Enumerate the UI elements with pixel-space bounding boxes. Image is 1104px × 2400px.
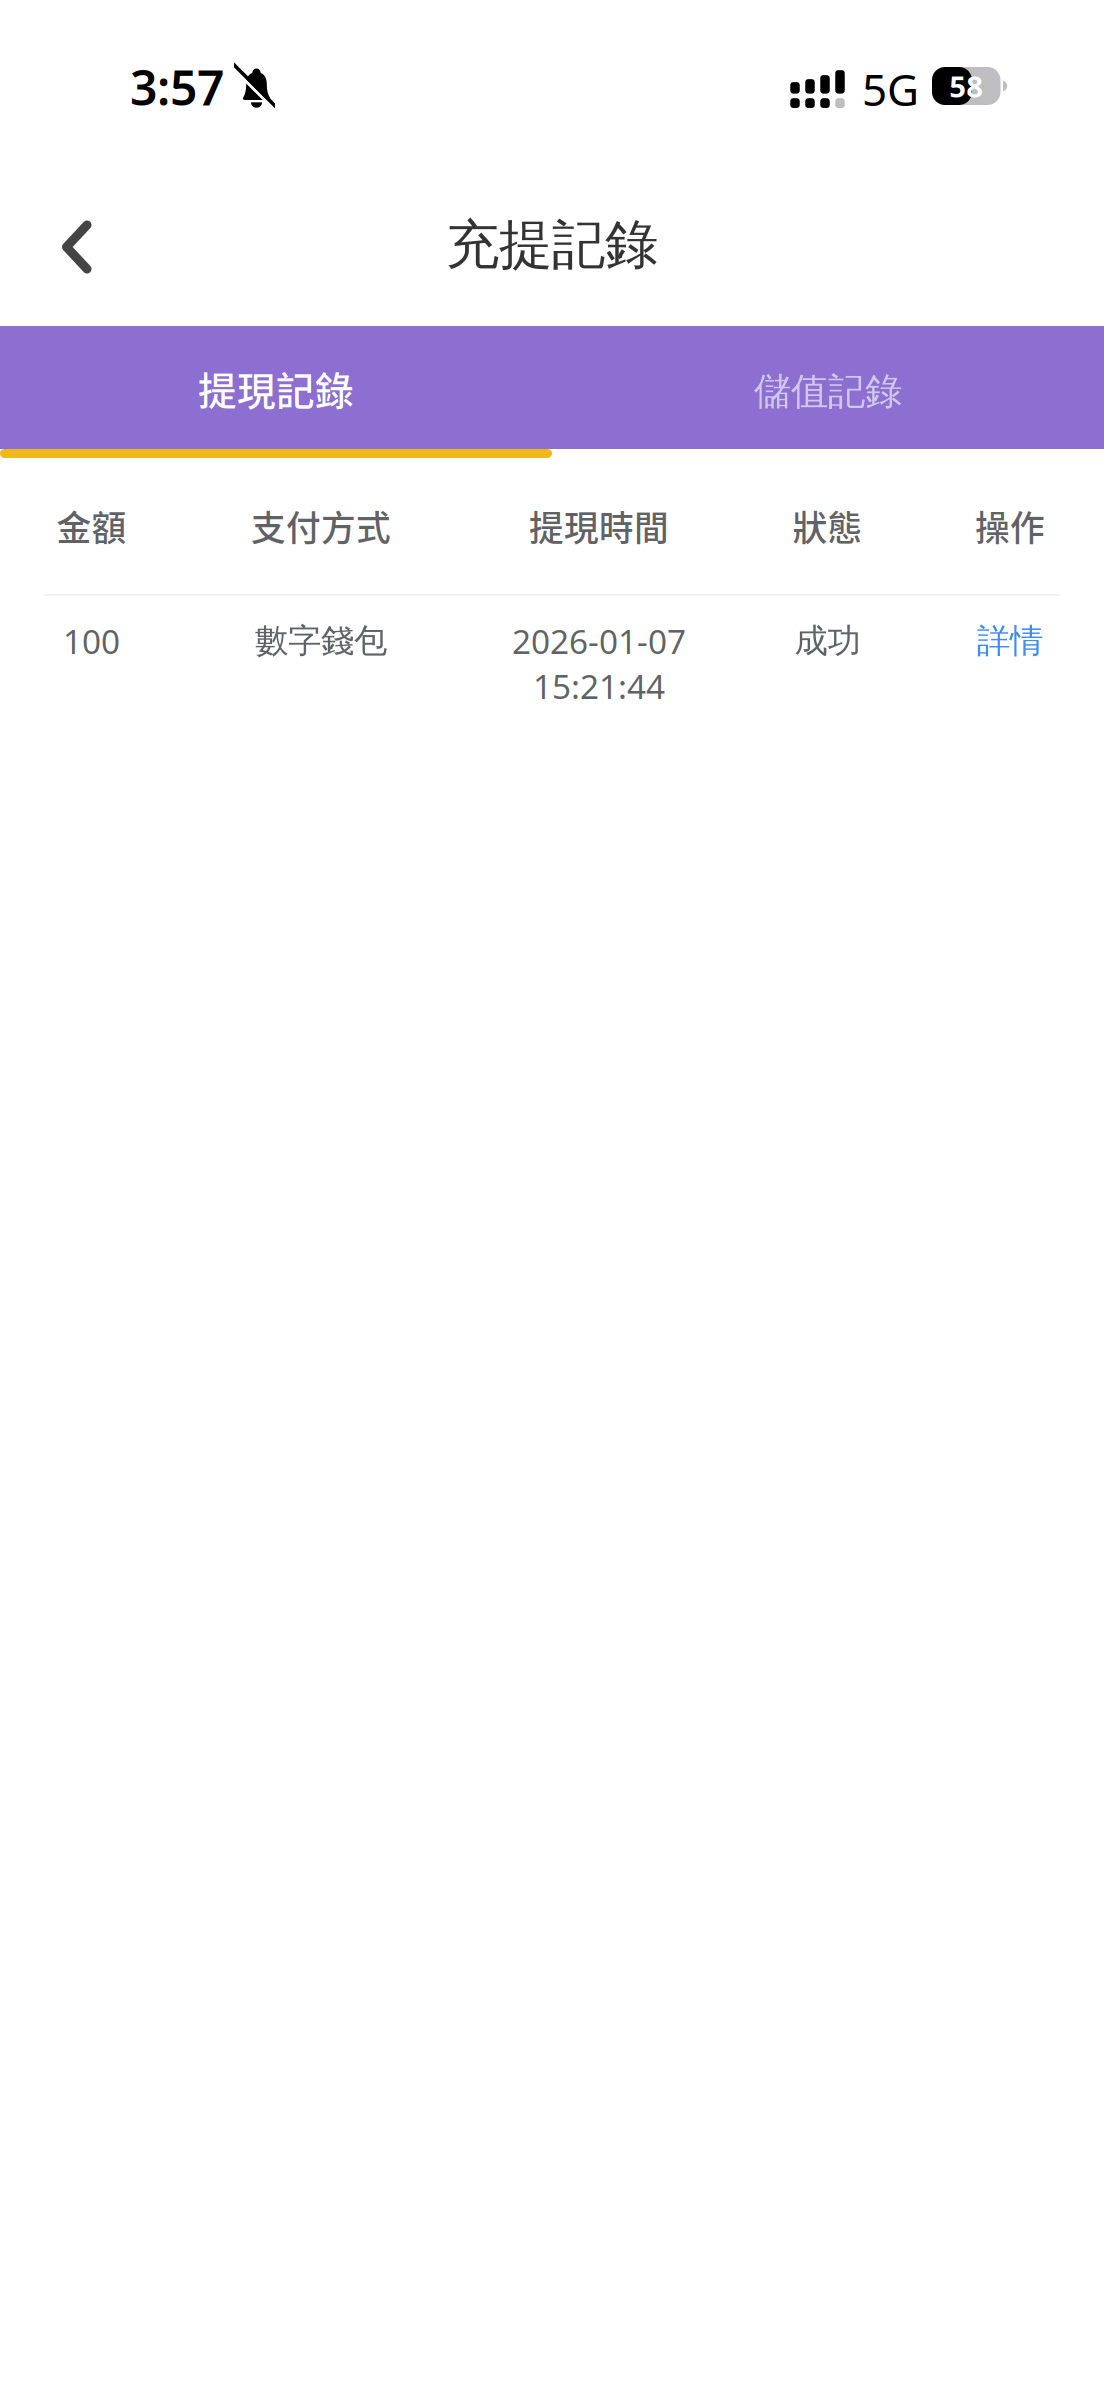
button[interactable]: 提現記錄 — [0, 326, 552, 449]
staticText: 100 — [63, 618, 120, 664]
staticText: 提現時間 — [529, 501, 669, 551]
staticText: 詳情 — [977, 620, 1043, 662]
staticText: 2026-01-07 — [512, 618, 686, 664]
staticText: 3:57 — [130, 54, 224, 120]
staticText: 狀態 — [792, 501, 862, 551]
staticText: 數字錢包 — [255, 620, 387, 662]
staticText: 5G — [862, 59, 919, 119]
staticText: 操作 — [975, 501, 1045, 551]
button[interactable]: 儲值記錄 — [552, 326, 1104, 449]
staticText: 儲值記錄 — [754, 368, 902, 415]
staticText: 15:21:44 — [533, 663, 665, 709]
staticText: 金額 — [56, 501, 126, 551]
staticText: 充提記錄 — [446, 211, 658, 279]
staticText: 成功 — [794, 620, 860, 662]
staticText: 支付方式 — [251, 501, 391, 551]
staticText: 58 — [949, 66, 983, 106]
button[interactable]: Back — [27, 197, 127, 297]
button[interactable]: 詳情 — [960, 620, 1060, 662]
staticText: 提現記錄 — [198, 360, 354, 416]
